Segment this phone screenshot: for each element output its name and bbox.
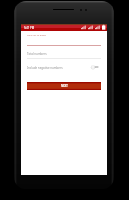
staticText: 5:41 PM xyxy=(24,26,35,30)
staticText: NEXT xyxy=(61,84,68,88)
button[interactable]: Include negative numbers toggle xyxy=(89,63,103,71)
staticText: Include negative numbers xyxy=(27,66,63,70)
button[interactable]: NEXT xyxy=(27,82,101,90)
staticText: Total numbers xyxy=(27,52,47,56)
staticText: Total list of digits xyxy=(27,33,46,36)
